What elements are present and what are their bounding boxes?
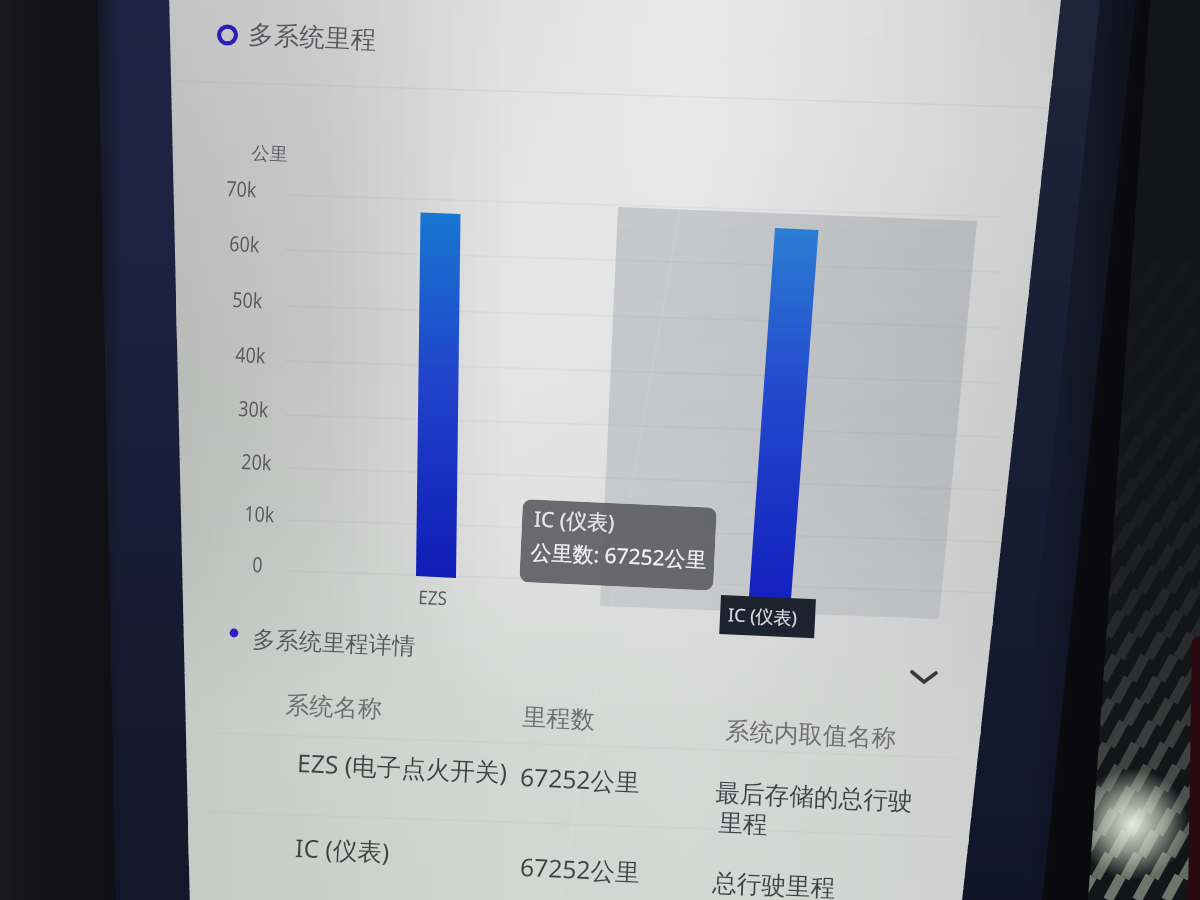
staticText: 70k xyxy=(226,174,258,204)
staticText: 里程 xyxy=(718,807,769,840)
staticText: 40k xyxy=(235,340,267,370)
button[interactable]: 多系统里程详情 xyxy=(222,616,434,660)
staticText: 20k xyxy=(241,447,273,477)
staticText: 30k xyxy=(238,394,270,424)
staticText: 50k xyxy=(232,285,264,315)
staticText: 67252公里 xyxy=(519,760,641,799)
staticText: 系统内取值名称 xyxy=(725,716,897,755)
staticText: 0 xyxy=(252,550,264,579)
staticText: 60k xyxy=(229,229,261,259)
staticText: EZS (电子点火开关) xyxy=(296,746,508,789)
staticText: 最后存储的总行驶 xyxy=(715,777,914,817)
staticText: 公里数: 67252公里 xyxy=(530,537,708,574)
staticText: IC (仪表) xyxy=(533,504,616,537)
staticText: 67252公里 xyxy=(519,850,641,889)
staticText: 系统名称 xyxy=(285,690,383,724)
button[interactable]: IC (仪表) xyxy=(519,499,717,591)
staticText: 里程数 xyxy=(522,702,596,735)
button[interactable]: IC (仪表) xyxy=(719,595,816,638)
staticText: 多系统里程 xyxy=(247,18,377,56)
staticText: EZS xyxy=(418,584,448,611)
button[interactable]: 多系统里程 xyxy=(206,12,396,60)
staticText: IC (仪表) xyxy=(727,602,798,630)
staticText: IC (仪表) xyxy=(294,831,391,869)
staticText: 多系统里程详情 xyxy=(252,625,417,661)
button[interactable]: Collapse details xyxy=(898,658,942,694)
staticText: 10k xyxy=(244,499,276,529)
staticText: 公里 xyxy=(251,141,289,166)
staticText: 总行驶里程 xyxy=(712,867,836,900)
